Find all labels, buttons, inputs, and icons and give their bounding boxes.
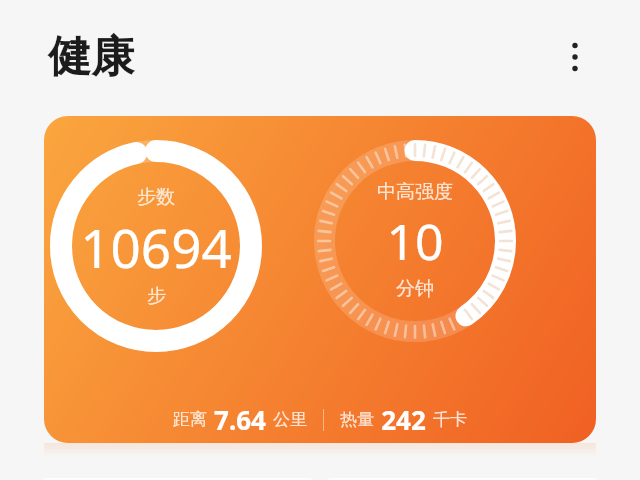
staticText: 步 <box>147 284 166 308</box>
staticText: 10 <box>386 207 444 275</box>
staticText: 热量 <box>340 409 374 430</box>
staticText: 距离 <box>173 409 207 430</box>
staticText: 10694 <box>80 211 232 283</box>
staticText: 千卡 <box>433 409 467 430</box>
staticText: 公里 <box>273 409 307 430</box>
staticText: 中高强度 <box>377 180 453 204</box>
staticText: 242 <box>381 402 426 437</box>
button[interactable]: 步数 <box>44 116 596 443</box>
button[interactable]: More options <box>551 33 599 81</box>
staticText: 7.64 <box>214 402 266 437</box>
staticText: 步数 <box>137 185 175 209</box>
staticText: 分钟 <box>396 277 434 301</box>
staticText: 健康 <box>48 30 134 84</box>
